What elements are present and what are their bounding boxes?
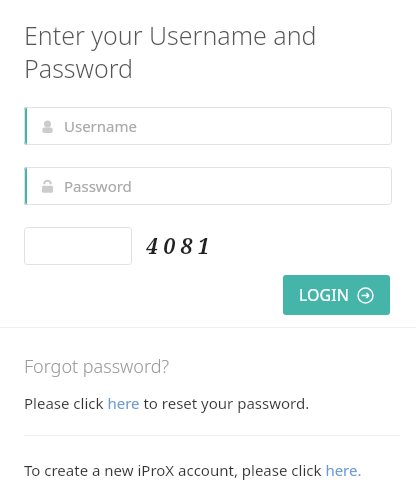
button[interactable]: LOGIN: [283, 275, 390, 315]
staticText: Please click here to reset your password…: [24, 393, 310, 413]
staticText: Password: [64, 176, 132, 196]
staticText: 4 0 8 1: [146, 232, 210, 261]
other: Login: [357, 287, 374, 304]
staticText: Forgot password?: [24, 354, 170, 379]
button[interactable]: To create a new iProX account, please cl…: [24, 460, 362, 480]
button[interactable]: Please click here to reset your password…: [24, 393, 310, 413]
staticText: LOGIN: [299, 284, 349, 306]
button[interactable]: [24, 227, 132, 265]
staticText: Username: [64, 116, 137, 136]
button[interactable]: Password: [24, 167, 392, 205]
staticText: Enter your Username and Password: [24, 18, 317, 85]
staticText: To create a new iProX account, please cl…: [24, 460, 362, 480]
button[interactable]: Username: [24, 107, 392, 145]
